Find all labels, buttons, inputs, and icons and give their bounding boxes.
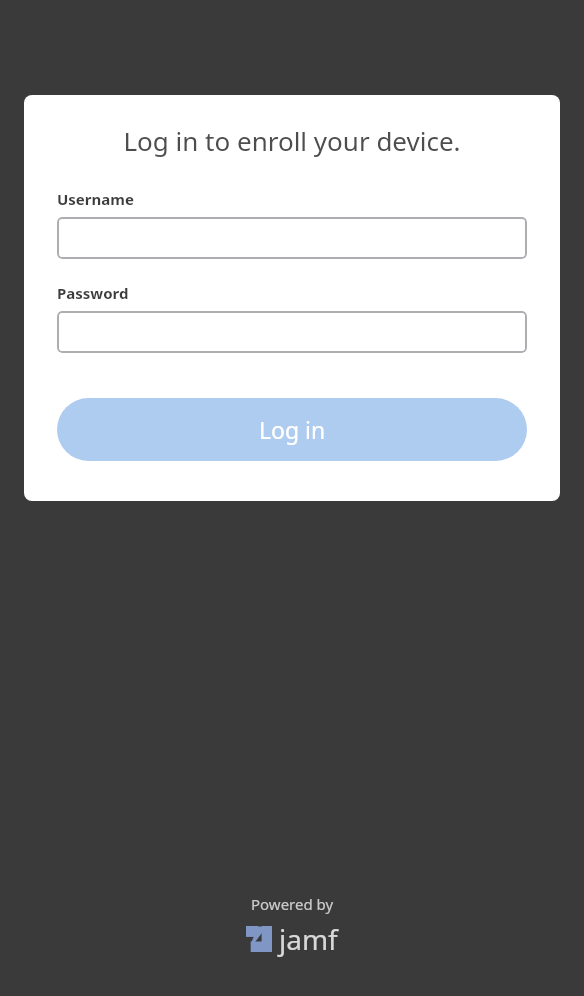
staticText: jamf [279, 920, 338, 958]
staticText: Password [57, 283, 129, 303]
staticText: Powered by [251, 894, 334, 914]
staticText: Username [57, 189, 134, 209]
staticText: Log in [259, 414, 326, 445]
button[interactable] [57, 311, 527, 353]
staticText: Log in to enroll your device. [57, 123, 527, 158]
other: Jamf logo [246, 926, 272, 952]
button[interactable] [57, 217, 527, 259]
button[interactable]: Log in [57, 398, 527, 461]
